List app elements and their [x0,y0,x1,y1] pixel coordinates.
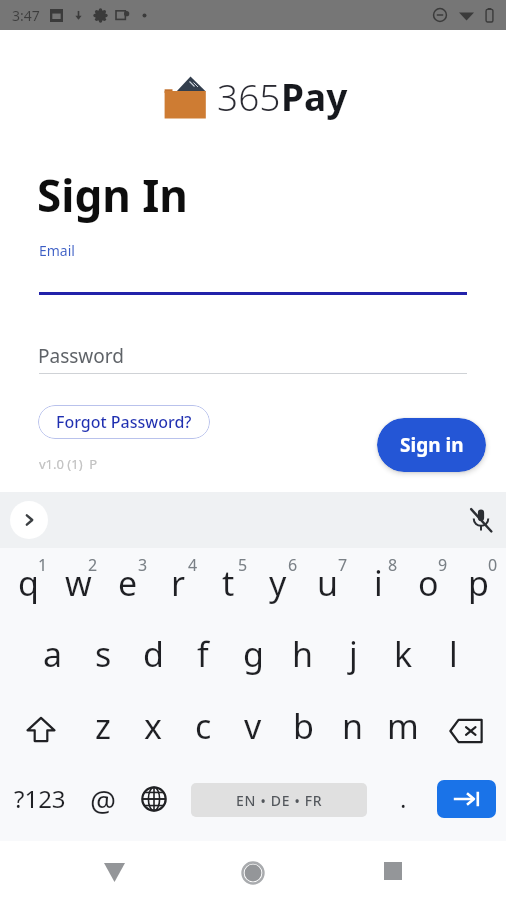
button[interactable]: y [253,548,303,618]
button[interactable]: k [378,618,428,690]
staticText: Sign In [37,165,188,225]
button[interactable]: Home [219,841,287,900]
staticText: s [95,631,112,677]
staticText: EN • DE • FR [236,791,323,810]
button[interactable]: u [303,548,353,618]
staticText: m [387,703,419,749]
button[interactable]: t [203,548,253,618]
button[interactable]: ?123 [3,762,77,834]
staticText: 6 [288,554,298,576]
button[interactable]: h [278,618,328,690]
staticText: k [394,631,413,677]
staticText: 7 [338,554,348,576]
button[interactable]: @ [77,764,129,836]
button[interactable]: s [78,618,128,690]
staticText: g [243,631,264,677]
staticText: 0 [488,554,498,576]
button[interactable]: Shift [3,690,78,762]
staticText: Pay [281,71,348,121]
staticText: o [418,560,439,606]
button[interactable]: r [153,548,203,618]
button[interactable]: Voice input off [464,503,498,537]
staticText: z [95,703,111,749]
button[interactable]: z [78,690,128,762]
button[interactable]: x [128,690,178,762]
button[interactable]: Backspace [428,690,503,762]
button[interactable]: . [378,762,428,834]
staticText: a [43,631,63,677]
staticText: w [65,560,92,606]
staticText: Password [38,343,124,369]
staticText: p [468,560,489,606]
staticText: f [197,631,209,677]
staticText: q [18,560,39,606]
button[interactable]: Expand toolbar [10,501,48,539]
staticText: n [342,703,364,749]
button[interactable]: Forgot Password? [38,405,210,439]
staticText: 9 [438,554,448,576]
staticText: r [171,560,186,606]
staticText: @ [90,781,117,820]
staticText: 1 [38,554,48,576]
staticText: Forgot Password? [56,411,192,433]
button[interactable]: v [228,690,278,762]
button[interactable]: Back [80,841,148,900]
button[interactable]: g [228,618,278,690]
button[interactable]: w [53,548,103,618]
staticText: h [292,631,314,677]
button[interactable]: e [103,548,153,618]
button[interactable]: f [178,618,228,690]
button[interactable]: Change language [129,763,178,835]
button[interactable]: j [328,618,378,690]
staticText: ?123 [14,782,66,815]
button[interactable]: Enter [437,780,496,818]
staticText: x [144,703,162,749]
staticText: i [374,560,383,606]
staticText: l [449,631,458,677]
button[interactable]: d [128,618,178,690]
staticText: v [244,703,262,749]
staticText: u [317,560,339,606]
button[interactable]: c [178,690,228,762]
button[interactable]: l [428,618,478,690]
button[interactable]: a [28,618,78,690]
button[interactable]: Sign in [377,418,486,472]
staticText: 3:47 [12,6,40,25]
staticText: v1.0 (1) P [39,455,98,473]
staticText: 8 [388,554,398,576]
button[interactable]: i [353,548,403,618]
staticText: 365 [217,71,281,121]
staticText: Email [39,241,75,260]
button[interactable]: n [328,690,378,762]
staticText: j [349,631,358,677]
button[interactable]: p [453,548,503,618]
staticText: 4 [188,554,198,576]
staticText: d [143,631,164,677]
button[interactable]: EN • DE • FR [191,783,367,817]
staticText: b [293,703,314,749]
staticText: 2 [88,554,98,576]
button[interactable]: q [3,548,53,618]
staticText: c [195,703,212,749]
button[interactable]: b [278,690,328,762]
staticText: Sign in [400,432,464,458]
button[interactable]: o [403,548,453,618]
staticText: 5 [238,554,248,576]
staticText: y [269,560,287,606]
button[interactable]: Recent apps [359,841,427,900]
staticText: 3 [138,554,148,576]
staticText: t [222,560,235,606]
staticText: e [118,560,138,606]
staticText: . [400,782,407,815]
button[interactable]: m [378,690,428,762]
